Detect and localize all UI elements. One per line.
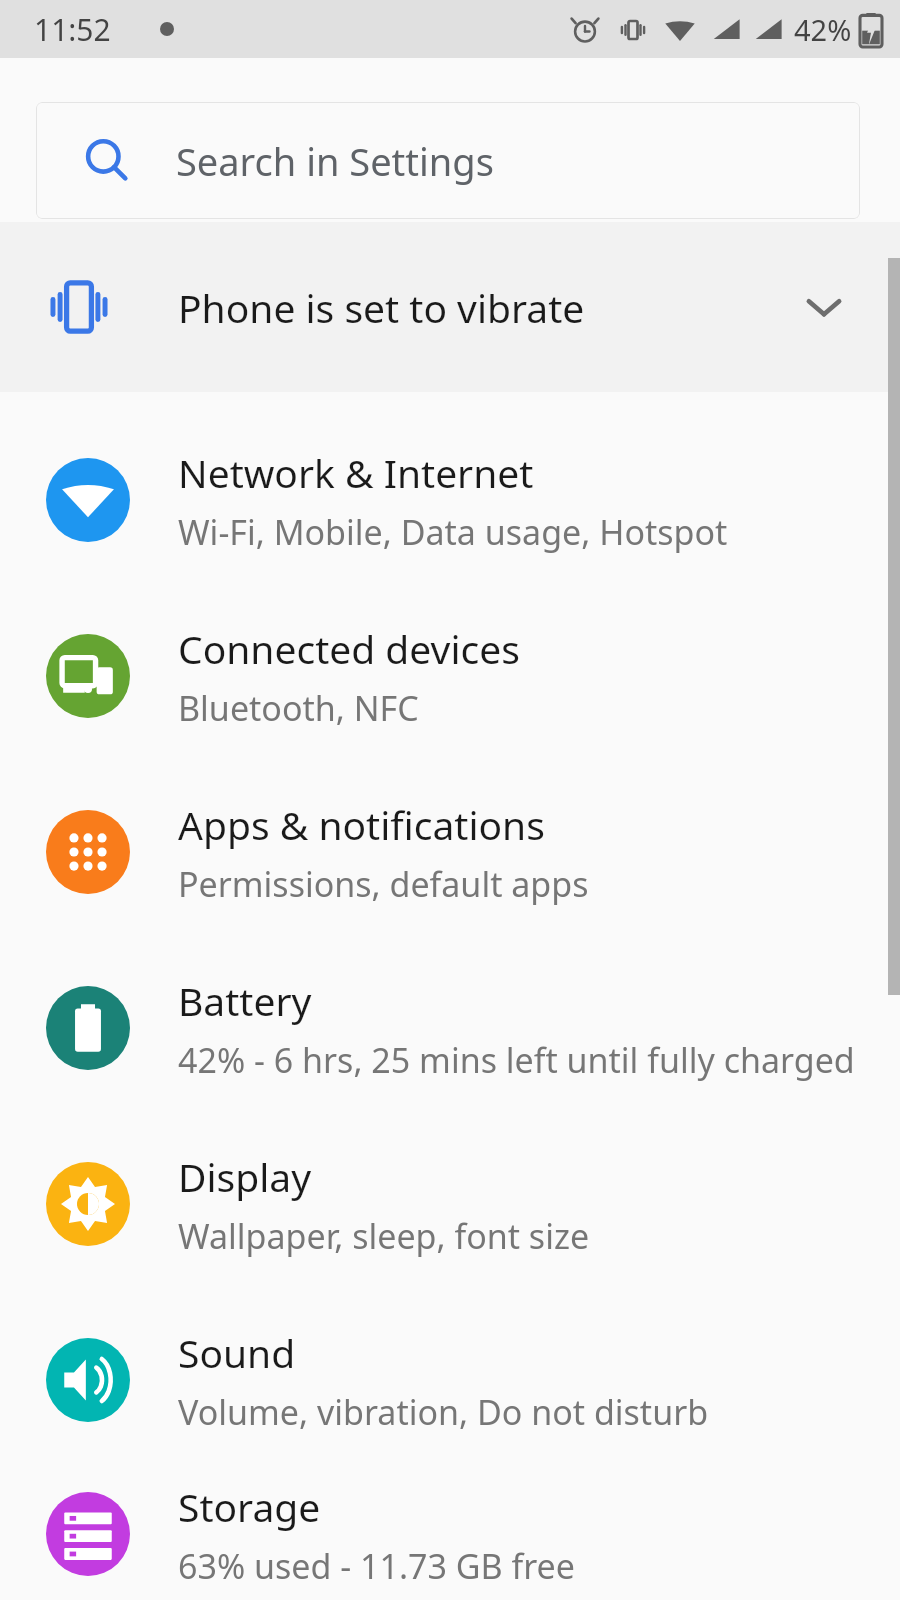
staticText: Wallpaper, sleep, font size [178,1213,590,1259]
button[interactable]: Apps & notifications [0,764,900,940]
staticText: Sound [178,1326,296,1379]
staticText: Display [178,1150,312,1203]
other: Expand [806,289,842,325]
staticText: Permissions, default apps [178,861,589,907]
staticText: 42% - 6 hrs, 25 mins left until fully ch… [178,1037,855,1083]
staticText: Connected devices [178,622,520,675]
staticText: Apps & notifications [178,798,545,851]
button[interactable]: Storage [0,1468,900,1600]
button[interactable]: Battery [0,940,900,1116]
staticText: 42% [794,10,852,49]
other: Search [84,138,130,184]
staticText: Phone is set to vibrate [178,281,806,334]
staticText: Search in Settings [176,135,494,187]
button[interactable]: Sound [0,1292,900,1468]
staticText: Wi-Fi, Mobile, Data usage, Hotspot [178,509,728,555]
staticText: 63% used - 11.73 GB free [178,1543,575,1589]
button[interactable]: Phone is set to vibrate [0,222,900,392]
button[interactable]: Display [0,1116,900,1292]
staticText: Volume, vibration, Do not disturb [178,1389,709,1435]
staticText: Storage [178,1480,321,1533]
button[interactable]: Search [36,102,860,219]
staticText: 11:52 [34,9,111,50]
button[interactable]: Network & Internet [0,412,900,588]
staticText: Bluetooth, NFC [178,685,419,731]
staticText: Network & Internet [178,446,534,499]
staticText: Battery [178,974,312,1027]
button[interactable]: Connected devices [0,588,900,764]
